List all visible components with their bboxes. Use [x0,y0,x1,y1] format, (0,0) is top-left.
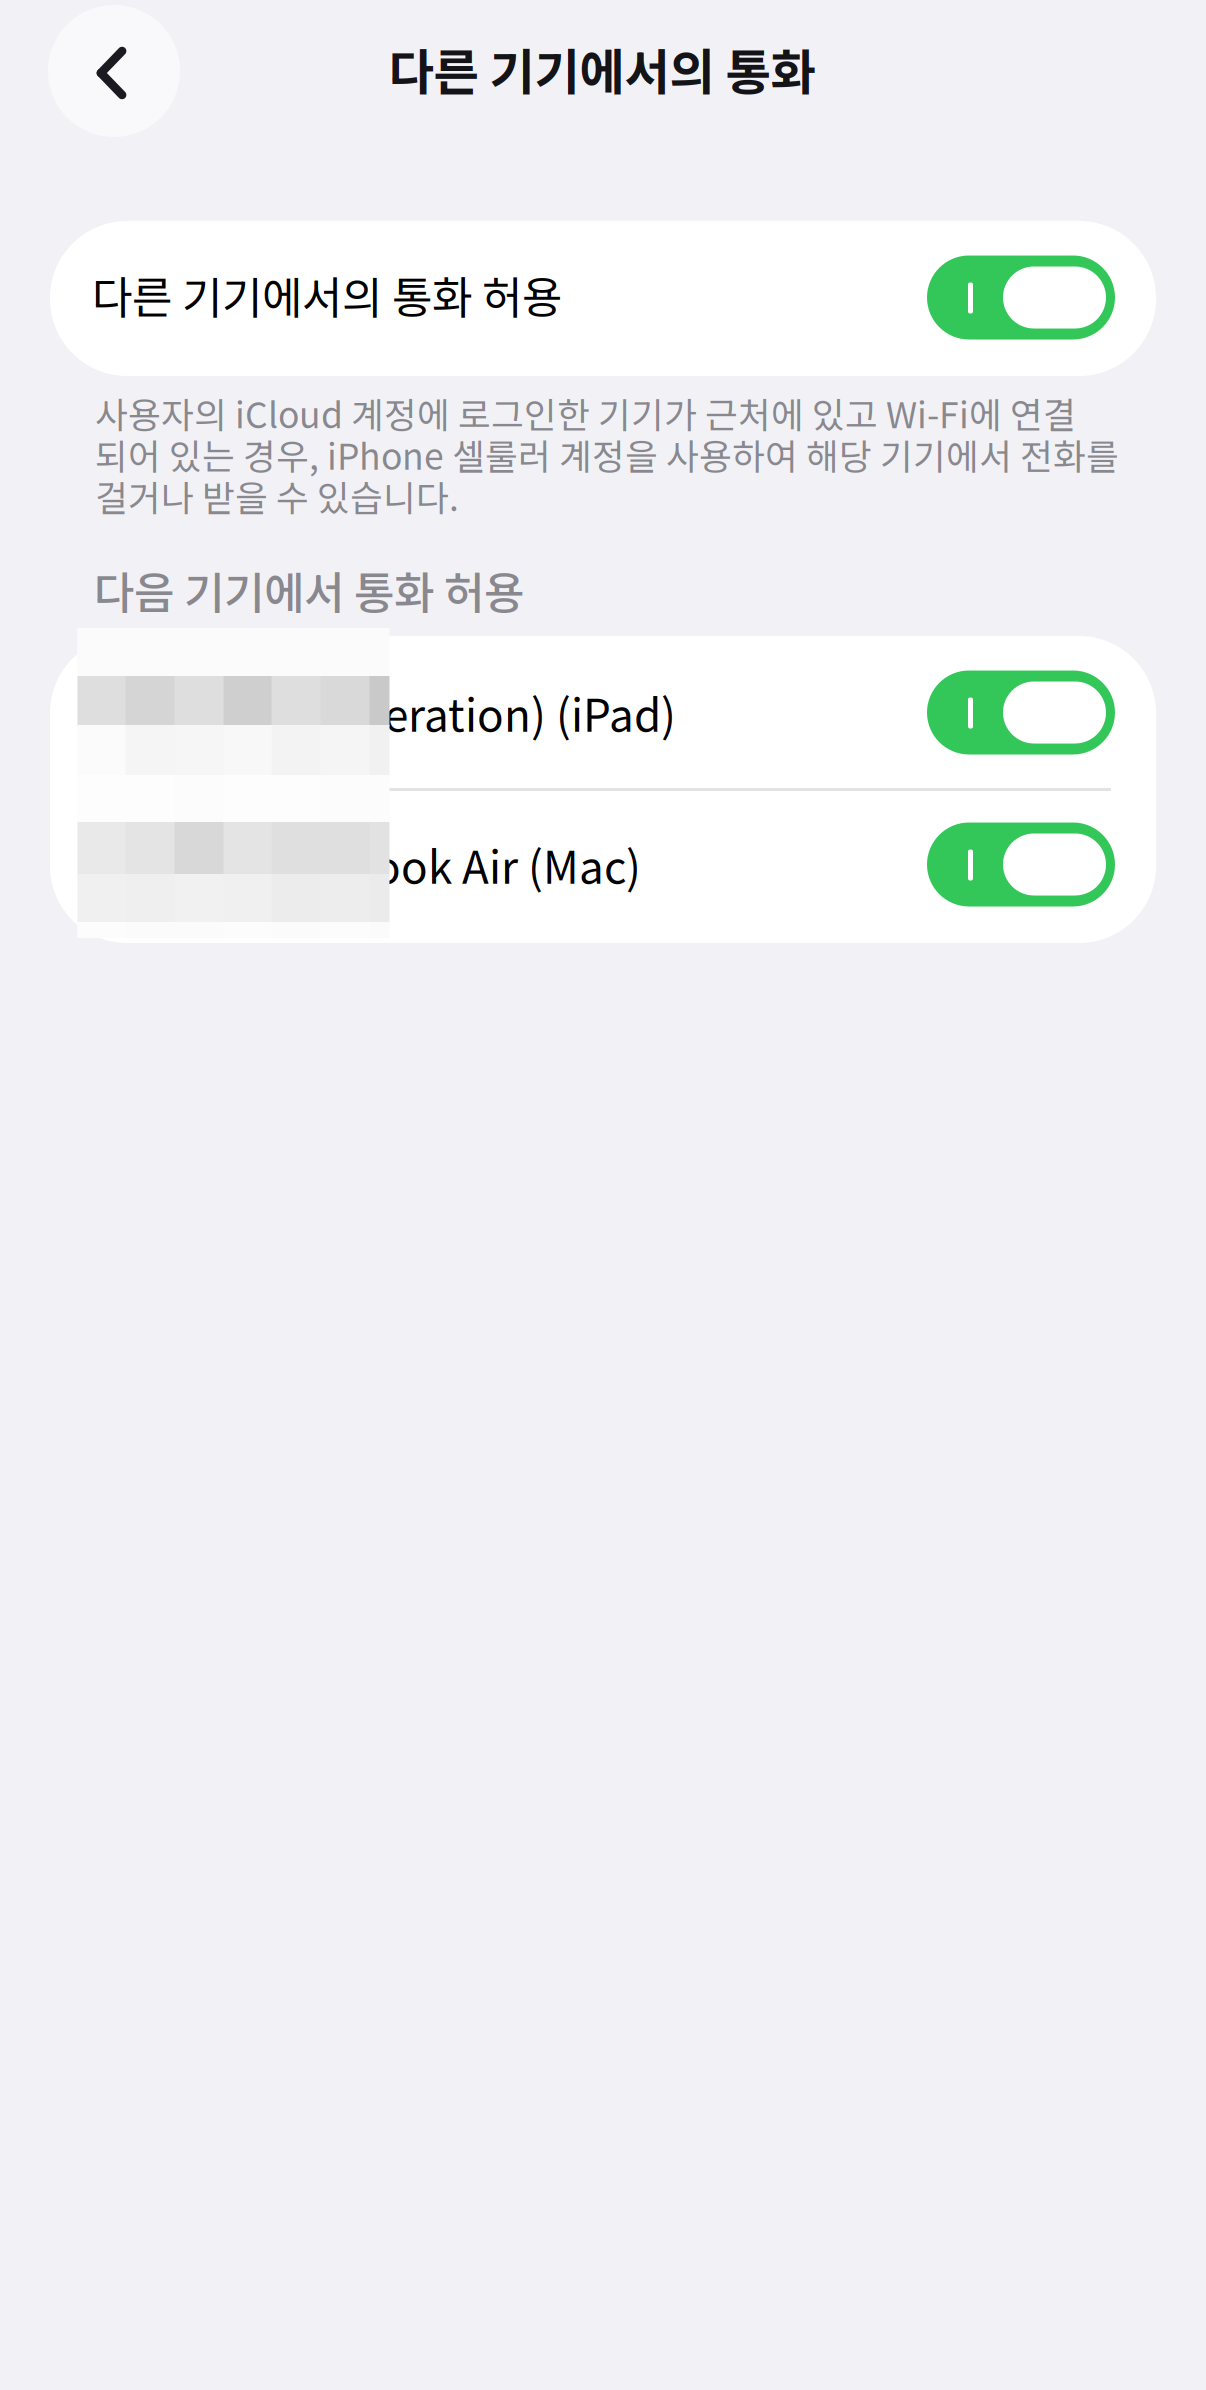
staticText: 다음 기기에서 통화 허용 [94,558,524,622]
staticText: 홍길동의 MacBook Air (Mac) [92,833,641,896]
button[interactable]: Back [48,5,180,137]
staticText: 되어 있는 경우, iPhone 셀룰러 계정을 사용하여 해당 기기에서 전화… [95,429,1119,480]
button[interactable]: iPad (10th generation) (iPad) [50,636,1156,789]
staticText: iPad (10th generation) (iPad) [92,681,676,744]
staticText: 사용자의 iCloud 계정에 로그인한 기기가 근처에 있고 Wi-Fi에 연… [95,387,1076,438]
button[interactable]: 다른 기기에서의 통화 허용 [50,221,1156,374]
staticText: 다른 기기에서의 통화 [388,33,815,105]
button[interactable]: 홍길동의 MacBook Air (Mac) [50,788,1156,941]
staticText: 걸거나 받을 수 있습니다. [95,470,459,521]
staticText: 다른 기기에서의 통화 허용 [92,263,562,326]
